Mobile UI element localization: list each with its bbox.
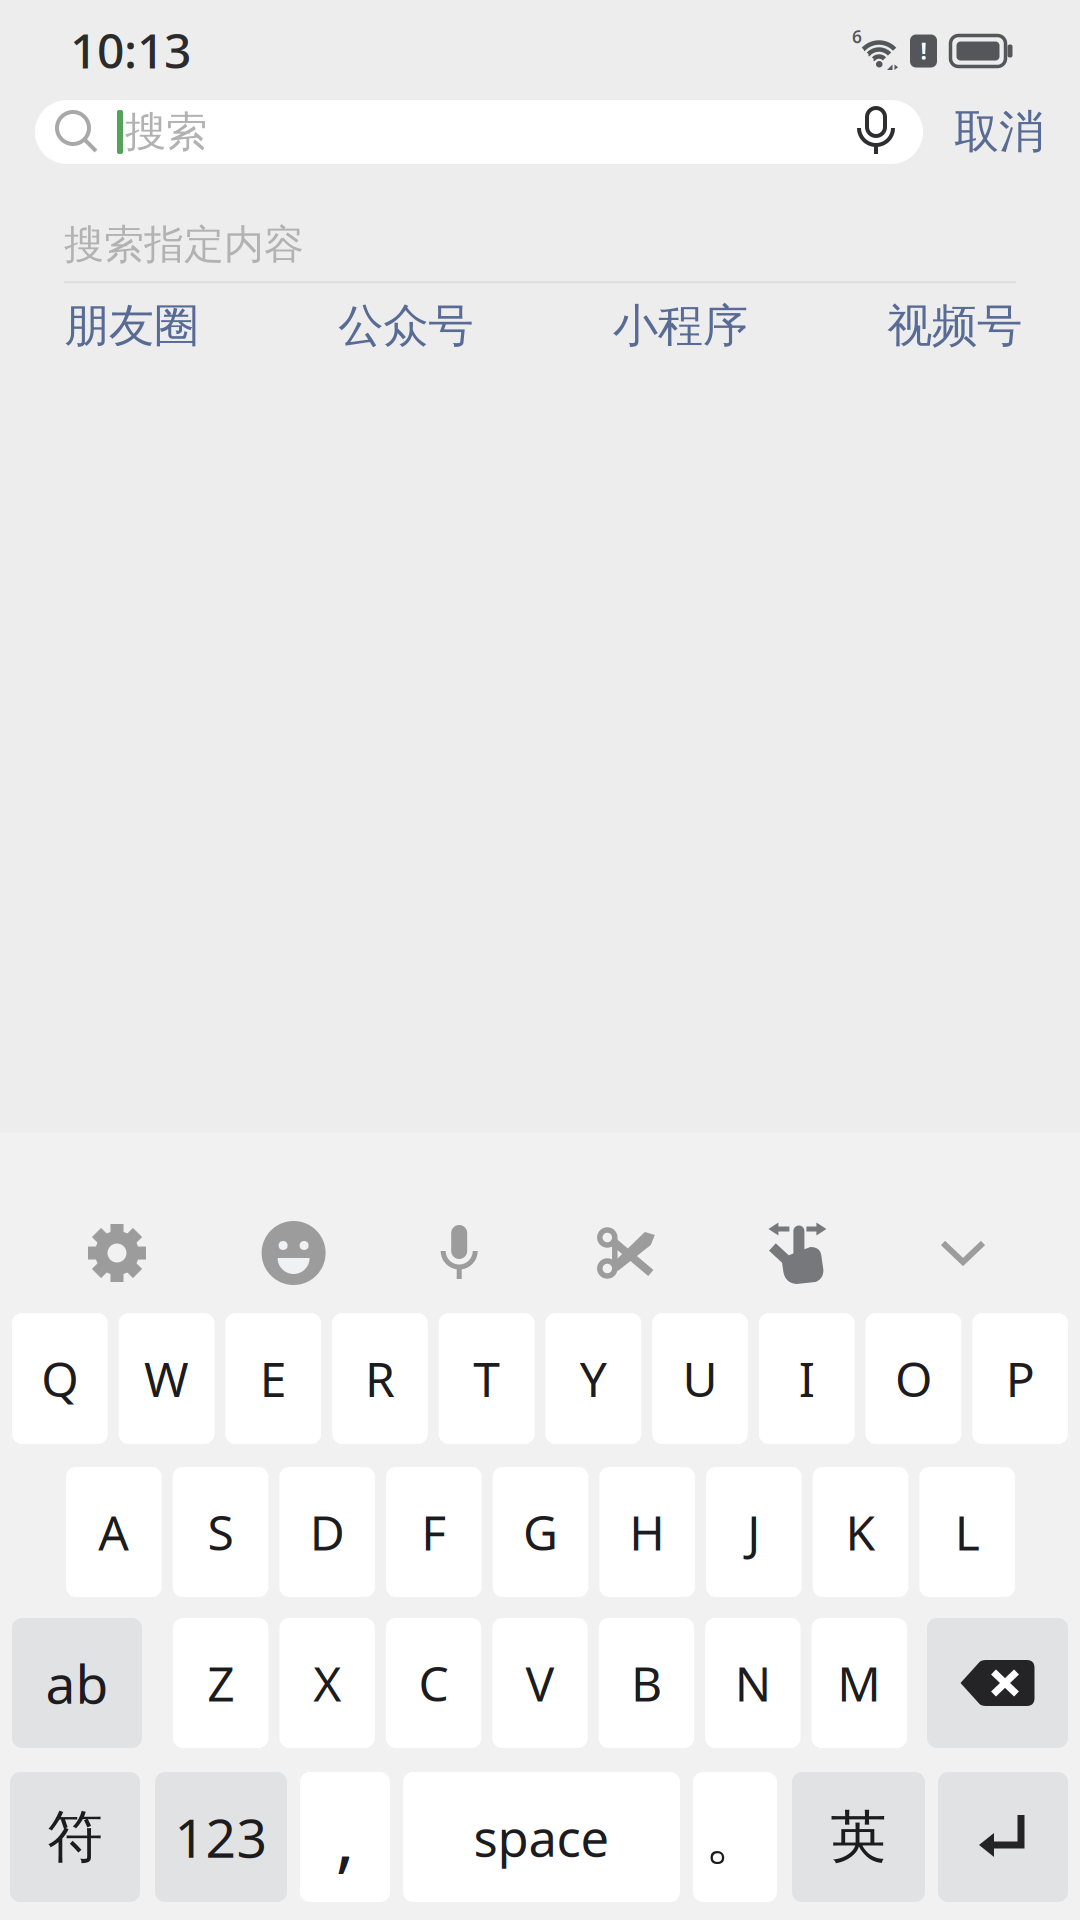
button[interactable]: 公众号 [338,298,473,354]
staticText: C [419,1651,449,1715]
button[interactable]: 收起键盘 [940,1240,986,1266]
staticText: ! [920,36,926,66]
button[interactable]: U [652,1313,748,1444]
staticText: E [260,1347,287,1410]
button[interactable]: ab [12,1618,142,1748]
button[interactable]: 符 [10,1772,140,1902]
staticText: P [1006,1347,1035,1410]
staticText: K [845,1500,875,1564]
button[interactable]: D [279,1467,375,1597]
button[interactable]: 取消 [954,104,1044,160]
button[interactable]: 搜索 [35,100,923,164]
staticText: 小程序 [613,298,748,354]
button[interactable]: I [759,1313,855,1444]
button[interactable]: E [225,1313,321,1444]
staticText: D [310,1500,345,1564]
staticText: 搜索指定内容 [64,220,304,269]
staticText: H [629,1500,665,1564]
staticText: W [144,1347,189,1410]
button[interactable]: B [599,1618,694,1748]
staticText: 公众号 [338,298,473,354]
button[interactable]: 手势 [768,1222,826,1284]
button[interactable]: H [599,1467,695,1597]
staticText: 6 [852,25,862,48]
staticText: 取消 [954,104,1044,160]
button[interactable]: 换行 [938,1772,1068,1902]
staticText: 搜索 [125,107,207,157]
button[interactable]: Q [12,1313,108,1444]
button[interactable]: T [439,1313,534,1444]
staticText: X [313,1651,341,1715]
staticText: 123 [174,1802,267,1872]
staticText: M [837,1651,881,1715]
button[interactable]: 英 [792,1772,925,1902]
button[interactable]: 语音 [439,1222,479,1284]
button[interactable]: L [919,1467,1015,1597]
staticText: ab [45,1648,108,1718]
button[interactable]: W [119,1313,214,1444]
button[interactable]: 朋友圈 [64,298,199,354]
staticText: 英 [830,1803,886,1871]
button[interactable]: 设置 [86,1222,148,1284]
staticText: 符 [47,1803,103,1871]
button[interactable]: Z [173,1618,268,1748]
staticText: O [895,1347,932,1410]
staticText: 视频号 [887,298,1022,354]
staticText: Z [207,1651,234,1715]
staticText: space [473,1803,609,1871]
button[interactable]: K [813,1467,908,1597]
button[interactable]: 。 [693,1772,777,1902]
button[interactable]: 剪贴 [593,1228,655,1278]
staticText: 朋友圈 [64,298,199,354]
button[interactable]: 123 [155,1772,287,1902]
button[interactable]: 删除 [927,1618,1068,1748]
staticText: Y [580,1347,607,1410]
button[interactable]: G [493,1467,588,1597]
button[interactable]: V [492,1618,588,1748]
staticText: R [365,1347,395,1410]
button[interactable]: O [866,1313,961,1444]
button[interactable]: S [173,1467,268,1597]
staticText: 10:13 [70,18,191,82]
button[interactable]: M [812,1618,907,1748]
button[interactable]: X [279,1618,375,1748]
staticText: G [523,1500,558,1564]
button[interactable]: C [386,1618,481,1748]
button[interactable]: , [300,1772,390,1902]
button[interactable]: Y [545,1313,641,1444]
button[interactable]: P [972,1313,1068,1444]
button[interactable]: space [403,1772,680,1902]
staticText: , [335,1789,354,1885]
button[interactable]: R [332,1313,428,1444]
staticText: V [525,1651,554,1715]
staticText: A [98,1500,129,1564]
staticText: 。 [704,1799,765,1875]
staticText: F [421,1500,446,1564]
button[interactable]: N [705,1618,800,1748]
button[interactable]: 小程序 [613,298,748,354]
button[interactable]: F [386,1467,482,1597]
staticText: S [207,1500,233,1564]
staticText: J [747,1500,760,1564]
button[interactable]: J [706,1467,802,1597]
button[interactable]: 语音输入 [857,106,923,158]
staticText: B [631,1651,662,1715]
staticText: T [473,1347,500,1410]
button[interactable]: 表情 [262,1221,326,1285]
staticText: Q [41,1347,78,1410]
staticText: I [799,1347,815,1410]
staticText: N [735,1651,771,1715]
staticText: L [955,1500,980,1564]
staticText: U [682,1347,717,1410]
button[interactable]: 视频号 [887,298,1022,354]
button[interactable]: A [66,1467,162,1597]
